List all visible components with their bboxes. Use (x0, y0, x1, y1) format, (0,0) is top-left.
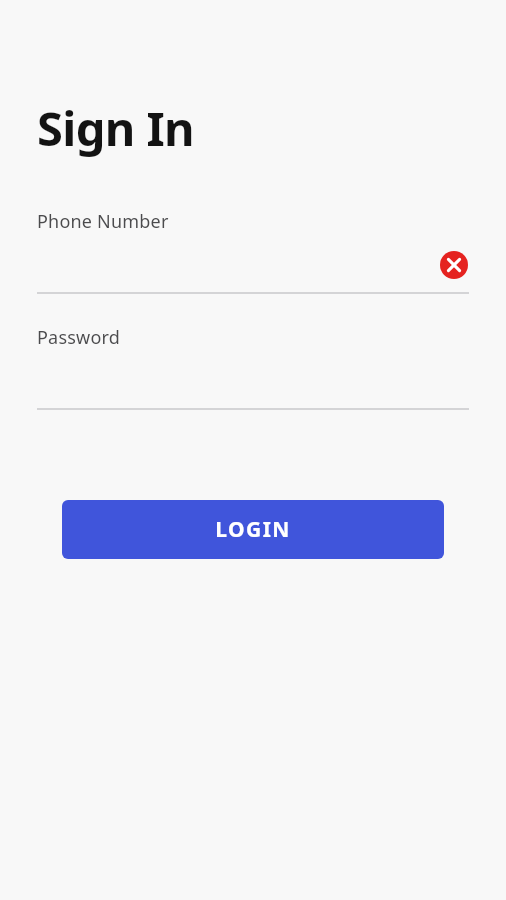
staticText: LOGIN (215, 515, 291, 544)
staticText: Phone Number (37, 209, 169, 234)
button[interactable]: LOGIN (62, 500, 444, 559)
staticText: Password (37, 325, 121, 350)
staticText: Sign In (37, 96, 195, 160)
other: Phone number error (440, 251, 468, 279)
